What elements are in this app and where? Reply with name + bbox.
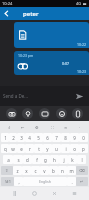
- staticText: 10:23: [77, 69, 86, 74]
- staticText: 10:23 pm: [18, 53, 34, 58]
- button[interactable]: e: [17, 144, 25, 153]
- staticText: English: [39, 179, 51, 184]
- staticText: h: [53, 157, 56, 163]
- button[interactable]: Keyboard: [69, 188, 80, 199]
- button[interactable]: Enter: [76, 177, 88, 186]
- button[interactable]: Send: [72, 89, 86, 103]
- staticText: 4: [28, 135, 31, 141]
- staticText: z: [16, 168, 19, 174]
- button[interactable]: 10:23 pm: [14, 51, 89, 75]
- button[interactable]: i: [61, 144, 70, 153]
- staticText: s: [17, 157, 20, 163]
- staticText: x: [25, 168, 28, 174]
- button[interactable]: ≈: [61, 122, 71, 132]
- button[interactable]: Attach: [72, 108, 83, 119]
- button[interactable]: q: [1, 144, 9, 153]
- button[interactable]: 8: [61, 133, 70, 142]
- button[interactable]: Symbols: [1, 177, 14, 186]
- button[interactable]: m: [67, 166, 76, 175]
- staticText: ⇧: [5, 168, 9, 173]
- button[interactable]: y: [43, 144, 52, 153]
- button[interactable]: Back: [9, 188, 20, 199]
- button[interactable]: ←: [18, 122, 28, 132]
- button[interactable]: 7: [52, 133, 61, 142]
- button[interactable]: x: [22, 166, 31, 175]
- button[interactable]: 0: [79, 133, 88, 142]
- button[interactable]: v: [40, 166, 49, 175]
- button[interactable]: Backspace: [76, 166, 88, 175]
- staticText: o: [73, 146, 76, 152]
- button[interactable]: l: [77, 155, 86, 164]
- button[interactable]: w: [9, 144, 17, 153]
- button[interactable]: g: [41, 155, 50, 164]
- button[interactable]: f: [32, 155, 41, 164]
- staticText: .: [71, 179, 73, 185]
- button[interactable]: n: [58, 166, 67, 175]
- staticText: ⌫: [79, 168, 85, 173]
- button[interactable]: Sticker: [39, 108, 50, 119]
- staticText: d: [26, 157, 29, 163]
- button[interactable]: 9: [70, 133, 79, 142]
- button[interactable]: 10:22: [14, 22, 89, 48]
- button[interactable]: Recents: [49, 188, 60, 199]
- button[interactable]: ,: [14, 177, 23, 186]
- button[interactable]: Home: [29, 188, 40, 199]
- button[interactable]: 2: [9, 133, 17, 142]
- button[interactable]: 3: [17, 133, 25, 142]
- button[interactable]: a: [3, 155, 13, 164]
- staticText: 10:24: [2, 1, 13, 6]
- staticText: 7: [55, 135, 58, 141]
- button[interactable]: z: [13, 166, 22, 175]
- staticText: ,: [18, 179, 20, 185]
- staticText: n: [61, 168, 64, 174]
- button[interactable]: b: [49, 166, 58, 175]
- button[interactable]: t: [34, 144, 43, 153]
- button[interactable]: Camera: [6, 108, 17, 119]
- button[interactable]: h: [50, 155, 59, 164]
- staticText: ≈: [64, 125, 68, 130]
- staticText: v: [43, 168, 46, 174]
- button[interactable]: :): [4, 122, 14, 132]
- staticText: 9: [73, 135, 76, 141]
- button[interactable]: c: [31, 166, 40, 175]
- button[interactable]: Back: [0, 7, 13, 20]
- staticText: y: [46, 146, 49, 152]
- button[interactable]: Shift: [1, 166, 13, 175]
- button[interactable]: j: [59, 155, 68, 164]
- button[interactable]: Location: [22, 108, 33, 119]
- button[interactable]: s: [13, 155, 23, 164]
- button[interactable]: ∷: [47, 122, 57, 132]
- button[interactable]: k: [68, 155, 77, 164]
- button[interactable]: d: [23, 155, 32, 164]
- button[interactable]: 6: [43, 133, 52, 142]
- button[interactable]: 4: [25, 133, 34, 142]
- button[interactable]: ⚙: [32, 122, 42, 132]
- staticText: a: [7, 157, 10, 163]
- staticText: w: [11, 146, 15, 152]
- staticText: ↵: [80, 179, 84, 184]
- staticText: ∷: [51, 125, 54, 130]
- staticText: c: [34, 168, 37, 174]
- button[interactable]: o: [70, 144, 79, 153]
- staticText: 1: [4, 135, 7, 141]
- button[interactable]: Space: [23, 177, 67, 186]
- button[interactable]: Emoji: [56, 108, 67, 119]
- staticText: :): [8, 125, 11, 130]
- staticText: b: [52, 168, 55, 174]
- button[interactable]: u: [52, 144, 61, 153]
- button[interactable]: 1: [1, 133, 9, 142]
- staticText: 2: [12, 135, 15, 141]
- staticText: u: [55, 146, 58, 152]
- staticText: l: [81, 157, 83, 163]
- staticText: Send a De...: [3, 93, 72, 99]
- staticText: 3: [20, 135, 23, 141]
- staticText: 10:22: [77, 42, 86, 47]
- staticText: 8: [64, 135, 67, 141]
- button[interactable]: 5: [34, 133, 43, 142]
- button[interactable]: .: [67, 177, 76, 186]
- staticText: e: [20, 146, 23, 152]
- button[interactable]: r: [25, 144, 34, 153]
- staticText: g: [44, 157, 47, 163]
- button[interactable]: p: [79, 144, 88, 153]
